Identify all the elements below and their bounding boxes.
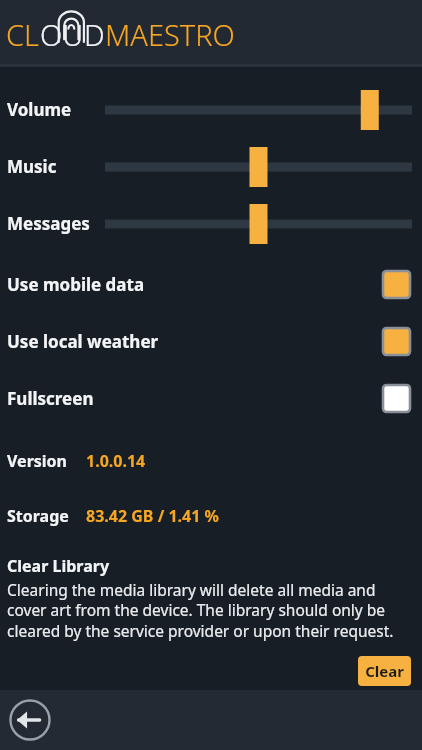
staticText: Fullscreen xyxy=(7,387,94,410)
staticText: Storage xyxy=(7,505,69,527)
button[interactable]: Clear Library xyxy=(0,555,422,686)
staticText: Clear xyxy=(365,661,404,681)
staticText: Use mobile data xyxy=(7,273,145,296)
staticText: Clear Library xyxy=(7,555,110,577)
staticText: Use local weather xyxy=(7,330,159,353)
staticText: Messages xyxy=(7,212,90,235)
staticText: 83.42 GB / 1.41 % xyxy=(86,505,219,527)
button[interactable]: Clear xyxy=(358,656,411,686)
staticText: Version xyxy=(7,450,68,472)
button[interactable]: Storage xyxy=(0,488,422,543)
button[interactable]: Fullscreen xyxy=(0,370,422,427)
staticText: MAESTRO xyxy=(105,15,235,54)
staticText: 1.0.0.14 xyxy=(86,450,146,472)
staticText: OU xyxy=(40,15,84,54)
button[interactable]: Volume xyxy=(0,81,422,138)
button[interactable]: Use mobile data xyxy=(0,256,422,313)
button[interactable]: Use local weather xyxy=(0,313,422,370)
button[interactable]: Version xyxy=(0,433,422,488)
staticText: Clearing the media library will delete a… xyxy=(7,579,414,642)
button[interactable]: Messages xyxy=(0,195,422,252)
button[interactable]: Back xyxy=(8,698,52,742)
staticText: D xyxy=(84,15,105,54)
button[interactable]: Music xyxy=(0,138,422,195)
staticText: Volume xyxy=(7,98,72,121)
staticText: Music xyxy=(7,155,57,178)
staticText: CL xyxy=(6,15,40,54)
